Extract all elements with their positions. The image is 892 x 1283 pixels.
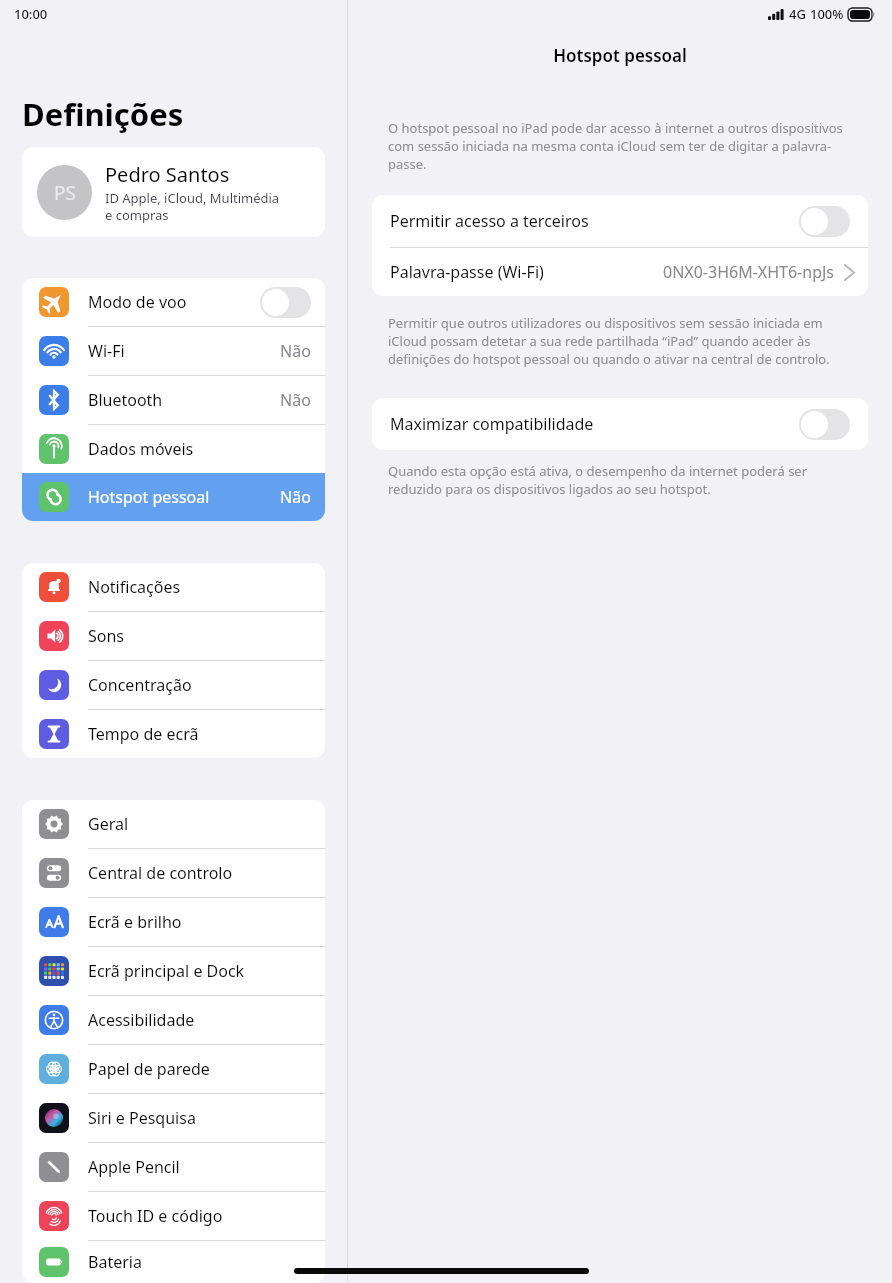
staticText: Permitir que outros utilizadores ou disp…	[388, 314, 852, 368]
staticText: 4G	[789, 5, 806, 23]
button[interactable]: Siri e Pesquisa	[22, 1094, 325, 1142]
staticText: ID Apple, iCloud, Multimédia e compras	[105, 189, 280, 224]
staticText: Central de controlo	[88, 862, 233, 884]
staticText: Definições	[22, 93, 184, 135]
staticText: Maximizar compatibilidade	[390, 413, 594, 435]
button[interactable]: Toggle	[799, 409, 850, 440]
button[interactable]: Permitir acesso a terceiros	[372, 195, 868, 247]
button[interactable]: Papel de parede	[22, 1045, 325, 1093]
button[interactable]: PS	[22, 147, 325, 237]
button[interactable]: Bateria	[22, 1241, 325, 1283]
staticText: Touch ID e código	[88, 1205, 223, 1227]
button[interactable]: Toggle	[799, 206, 850, 237]
button[interactable]: Wi-Fi	[22, 327, 325, 375]
button[interactable]: Palavra-passe (Wi-Fi)	[372, 248, 868, 296]
staticText: Não	[280, 340, 311, 362]
staticText: Apple Pencil	[88, 1156, 180, 1178]
staticText: Quando esta opção está ativa, o desempen…	[388, 462, 852, 498]
staticText: O hotspot pessoal no iPad pode dar acess…	[388, 119, 852, 173]
button[interactable]: Geral	[22, 800, 325, 848]
staticText: Hotspot pessoal	[348, 44, 892, 67]
button[interactable]: Maximizar compatibilidade	[372, 398, 868, 450]
staticText: Dados móveis	[88, 438, 194, 460]
staticText: Não	[280, 389, 311, 411]
button[interactable]: Ecrã e brilho	[22, 898, 325, 946]
staticText: Papel de parede	[88, 1058, 210, 1080]
button[interactable]: Toggle	[260, 287, 311, 318]
staticText: Tempo de ecrã	[88, 723, 199, 745]
button[interactable]: Concentração	[22, 661, 325, 709]
staticText: Siri e Pesquisa	[88, 1107, 196, 1129]
button[interactable]: Acessibilidade	[22, 996, 325, 1044]
button[interactable]: Sons	[22, 612, 325, 660]
button[interactable]: Hotspot pessoal	[22, 473, 325, 521]
staticText: Ecrã principal e Dock	[88, 960, 245, 982]
staticText: 0NX0-3H6M-XHT6-npJs	[663, 261, 835, 283]
staticText: Acessibilidade	[88, 1009, 195, 1031]
button[interactable]: Touch ID e código	[22, 1192, 325, 1240]
staticText: Não	[280, 486, 311, 508]
staticText: Modo de voo	[88, 291, 187, 313]
staticText: Bluetooth	[88, 389, 163, 411]
staticText: 10:00	[14, 5, 48, 23]
button[interactable]: Modo de voo	[22, 278, 325, 326]
staticText: Sons	[88, 625, 125, 647]
staticText: Palavra-passe (Wi-Fi)	[390, 261, 544, 283]
staticText: Geral	[88, 813, 129, 835]
staticText: Concentração	[88, 674, 192, 696]
staticText: PS	[54, 180, 76, 206]
staticText: Notificações	[88, 576, 181, 598]
staticText: Bateria	[88, 1251, 142, 1273]
button[interactable]: Dados móveis	[22, 425, 325, 473]
button[interactable]: Tempo de ecrã	[22, 710, 325, 758]
staticText: Pedro Santos	[105, 161, 230, 188]
staticText: Wi-Fi	[88, 340, 125, 362]
staticText: Hotspot pessoal	[88, 486, 210, 508]
staticText: 100%	[810, 5, 844, 23]
staticText: Permitir acesso a terceiros	[390, 210, 589, 232]
button[interactable]: Ecrã principal e Dock	[22, 947, 325, 995]
button[interactable]: Central de controlo	[22, 849, 325, 897]
button[interactable]: Apple Pencil	[22, 1143, 325, 1191]
button[interactable]: Notificações	[22, 563, 325, 611]
button[interactable]: Bluetooth	[22, 376, 325, 424]
staticText: Ecrã e brilho	[88, 911, 182, 933]
